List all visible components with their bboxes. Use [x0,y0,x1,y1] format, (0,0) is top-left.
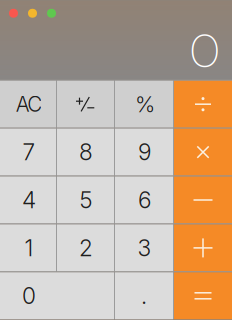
button[interactable]: 0 [0,272,114,319]
button[interactable]: 7 [0,129,56,176]
button[interactable]: 8 [57,129,114,176]
button[interactable]: Minimize [28,9,37,18]
staticText: 3 [137,234,151,262]
staticText: 5 [79,186,92,214]
button[interactable]: Equals [174,272,232,319]
button[interactable]: 3 [115,224,173,271]
button[interactable]: Close [9,9,18,18]
staticText: 0 [22,282,36,309]
staticText: AC [16,92,42,117]
staticText: 2 [79,234,93,262]
button[interactable]: Toggle sign [57,81,114,128]
staticText: 0 [189,21,220,79]
staticText: 4 [22,186,36,214]
button[interactable]: 6 [115,177,173,223]
button[interactable]: 5 [57,177,114,223]
button[interactable]: 9 [115,129,173,176]
staticText: 7 [22,138,35,166]
button[interactable]: 1 [0,224,56,271]
staticText: . [141,282,147,309]
staticText: 9 [138,138,151,166]
button[interactable]: Add [174,224,232,271]
button[interactable]: Subtract [174,177,232,223]
button[interactable]: Multiply [174,129,232,176]
button[interactable]: % [115,81,173,128]
staticText: 8 [79,138,93,166]
button[interactable]: Divide [174,81,232,128]
button[interactable]: Zoom [47,9,56,18]
button[interactable]: AC [0,81,56,128]
staticText: 6 [138,186,151,214]
staticText: % [135,91,155,117]
staticText: 1 [24,234,33,262]
button[interactable]: 4 [0,177,56,223]
button[interactable]: . [115,272,173,319]
button[interactable]: 2 [57,224,114,271]
